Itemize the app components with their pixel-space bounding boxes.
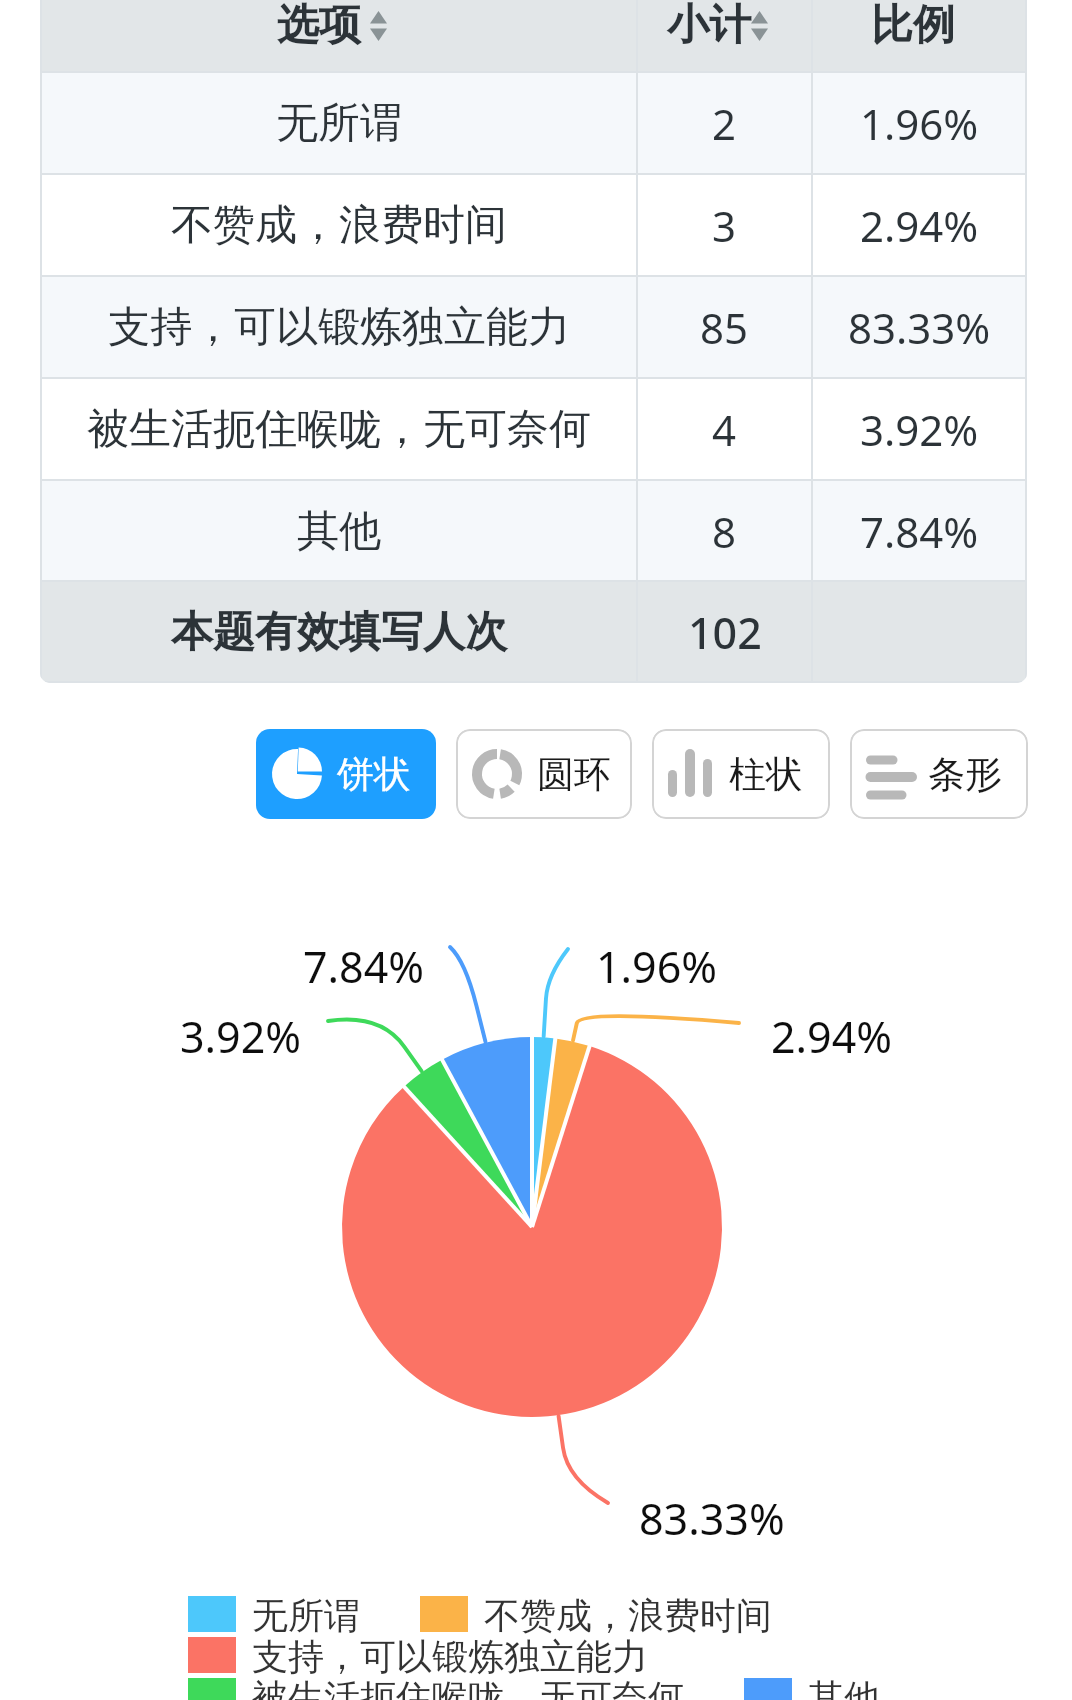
staticText: 7.84% (860, 503, 979, 560)
staticText: 条形 (928, 751, 1002, 798)
button[interactable]: 被生活扼住喉咙，无可奈何 (188, 1675, 684, 1700)
staticText: 圆环 (537, 751, 611, 798)
button[interactable]: 其他 (40, 480, 1027, 582)
button[interactable]: 无所谓 (188, 1593, 360, 1634)
staticText: 102 (688, 603, 762, 662)
staticText: 2.94% (771, 1007, 893, 1066)
button[interactable]: 小计 (630, 0, 805, 61)
staticText: 柱状 (729, 751, 803, 798)
staticText: 83.33% (848, 299, 991, 356)
staticText: 本题有效填写人次 (171, 606, 507, 659)
other: Sort by subtotal (751, 11, 768, 41)
staticText: 不赞成，浪费时间 (171, 199, 507, 252)
button[interactable]: 支持，可以锻炼独立能力 (40, 276, 1027, 378)
button[interactable]: 条形 (850, 729, 1028, 819)
button[interactable]: 饼状 (256, 729, 436, 819)
staticText: 2 (712, 95, 737, 152)
staticText: 无所谓 (276, 97, 402, 150)
staticText: 支持，可以锻炼独立能力 (108, 301, 570, 354)
staticText: 支持，可以锻炼独立能力 (252, 1634, 648, 1675)
button[interactable]: 不赞成，浪费时间 (40, 174, 1027, 276)
button[interactable]: 选项 (40, 0, 630, 61)
staticText: 8 (712, 503, 737, 560)
staticText: 无所谓 (252, 1593, 360, 1634)
staticText: 被生活扼住喉咙，无可奈何 (87, 403, 591, 456)
staticText: 3.92% (860, 401, 979, 458)
staticText: 85 (700, 299, 749, 356)
staticText: 选项 (277, 0, 361, 52)
staticText: 2.94% (860, 197, 979, 254)
staticText: 83.33% (639, 1489, 785, 1548)
staticText: 3.92% (180, 1007, 302, 1066)
staticText: 1.96% (860, 95, 979, 152)
staticText: 比例 (871, 0, 955, 52)
button[interactable]: 柱状 (652, 729, 830, 819)
button[interactable]: 选项 (40, 0, 1027, 72)
staticText: 3 (712, 197, 737, 254)
other: Sort by option (370, 11, 387, 41)
staticText: 其他 (297, 505, 381, 558)
staticText: 被生活扼住喉咙，无可奈何 (252, 1675, 684, 1700)
staticText: 7.84% (303, 937, 425, 996)
button[interactable]: 无所谓 (40, 72, 1027, 174)
staticText: 不赞成，浪费时间 (484, 1593, 772, 1634)
staticText: 4 (712, 401, 737, 458)
button[interactable]: 不赞成，浪费时间 (420, 1593, 772, 1634)
button[interactable]: 支持，可以锻炼独立能力 (188, 1634, 648, 1675)
button[interactable]: 圆环 (456, 729, 632, 819)
staticText: 小计 (667, 0, 751, 52)
button[interactable]: 其他 (744, 1675, 880, 1700)
button[interactable]: 被生活扼住喉咙，无可奈何 (40, 378, 1027, 480)
staticText: 饼状 (337, 751, 411, 798)
staticText: 1.96% (596, 937, 718, 996)
staticText: 其他 (808, 1675, 880, 1700)
